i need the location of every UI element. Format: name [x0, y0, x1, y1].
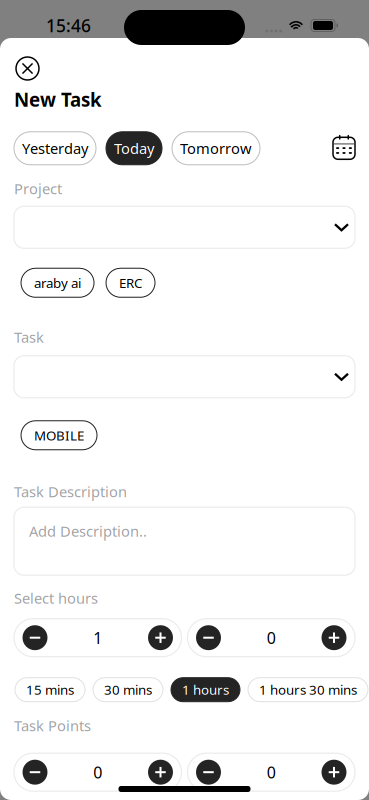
button[interactable]: Increase	[145, 623, 175, 653]
button[interactable]: Pick date	[333, 136, 355, 160]
staticText: Task Description	[14, 482, 127, 501]
staticText: 1 hours 30 mins	[259, 681, 357, 698]
staticText: New Task	[14, 87, 102, 112]
staticText: Yesterday	[22, 139, 88, 158]
button[interactable]: Increase	[319, 757, 349, 787]
button[interactable]: Today	[106, 132, 162, 165]
button[interactable]: ERC	[106, 268, 155, 297]
button[interactable]: MOBILE	[21, 421, 97, 450]
button[interactable]: Decrease	[20, 757, 50, 787]
staticText: 15:46	[46, 14, 91, 37]
button[interactable]: Decrease	[193, 623, 223, 653]
staticText: Task Points	[14, 716, 91, 735]
button[interactable]: Decrease	[20, 623, 50, 653]
staticText: Task	[14, 327, 44, 347]
staticText: 1 hours	[182, 681, 229, 698]
button[interactable]: 30 mins	[93, 678, 163, 702]
button[interactable]: araby ai	[21, 268, 94, 297]
button[interactable]: Decrease	[193, 757, 223, 787]
staticText: Add Description..	[29, 521, 147, 541]
staticText: 0	[93, 762, 102, 783]
staticText: Project	[14, 179, 62, 198]
staticText: MOBILE	[34, 426, 84, 444]
button[interactable]: 1 hours	[171, 678, 240, 702]
staticText: 0	[267, 762, 276, 783]
staticText: Select hours	[14, 588, 98, 608]
button[interactable]: Close	[14, 57, 39, 80]
button[interactable]: 15 mins	[15, 678, 85, 702]
staticText: Tomorrow	[180, 139, 252, 158]
staticText: 0	[267, 627, 276, 648]
staticText: araby ai	[34, 274, 81, 292]
staticText: 30 mins	[104, 681, 152, 698]
button[interactable]: Increase	[145, 757, 175, 787]
staticText: ERC	[119, 274, 142, 292]
button[interactable]: Increase	[319, 623, 349, 653]
button[interactable]: Yesterday	[14, 132, 96, 165]
staticText: 1	[93, 627, 102, 648]
staticText: Today	[114, 139, 154, 158]
button[interactable]	[14, 356, 355, 398]
button[interactable]: Tomorrow	[172, 132, 260, 165]
staticText: 15 mins	[26, 681, 74, 698]
button[interactable]	[14, 206, 355, 248]
button[interactable]: 1 hours 30 mins	[248, 678, 368, 702]
